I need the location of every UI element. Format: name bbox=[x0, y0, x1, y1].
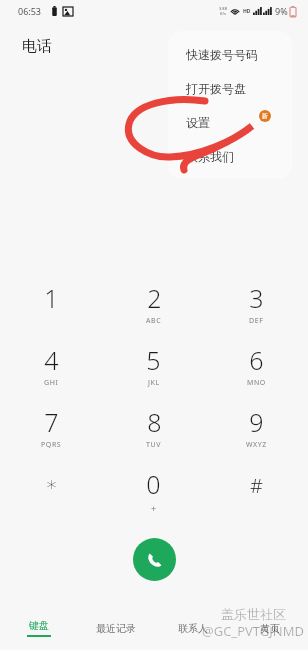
button[interactable]: 1 bbox=[0, 278, 102, 340]
staticText: 3 bbox=[249, 281, 264, 315]
staticText: 8 bbox=[147, 405, 162, 439]
staticText: TUV bbox=[146, 440, 162, 450]
staticText: 最近记录 bbox=[96, 622, 136, 635]
button[interactable]: Call bbox=[133, 538, 176, 581]
button[interactable]: # bbox=[205, 464, 308, 526]
staticText: 9% bbox=[275, 5, 288, 17]
staticText: 4 bbox=[44, 343, 59, 377]
button[interactable]: 最近记录 bbox=[77, 606, 154, 650]
staticText: 3.88 bbox=[219, 6, 227, 11]
button[interactable]: 快速拨号号码 bbox=[168, 37, 292, 71]
staticText: 快速拨号号码 bbox=[186, 47, 258, 62]
staticText: 黄页 bbox=[260, 622, 280, 635]
staticText: 0 bbox=[146, 467, 161, 501]
staticText: 联系人 bbox=[178, 622, 208, 635]
staticText: DEF bbox=[249, 316, 264, 326]
staticText: 联系我们 bbox=[186, 149, 234, 164]
button[interactable]: ∗ bbox=[0, 464, 102, 526]
staticText: 6 bbox=[249, 343, 264, 377]
button[interactable]: 9 bbox=[205, 402, 308, 464]
staticText: 2 bbox=[147, 281, 162, 315]
staticText: + bbox=[151, 502, 157, 514]
staticText: 盖乐世社区 bbox=[221, 606, 286, 622]
staticText: 打开拨号盘 bbox=[186, 81, 246, 96]
staticText: @GC_PVTGJNMD bbox=[202, 622, 304, 640]
button[interactable]: 联系人 bbox=[154, 606, 231, 650]
staticText: GHI bbox=[44, 378, 59, 388]
staticText: WXYZ bbox=[246, 440, 267, 450]
button[interactable]: 8 bbox=[102, 402, 205, 464]
button[interactable]: 3 bbox=[205, 278, 308, 340]
staticText: 电话 bbox=[22, 37, 52, 56]
staticText: JKL bbox=[148, 378, 160, 388]
staticText: HD bbox=[243, 8, 251, 15]
button[interactable]: 6 bbox=[205, 340, 308, 402]
button[interactable]: 5 bbox=[102, 340, 205, 402]
staticText: 06:53 bbox=[18, 5, 42, 17]
staticText: # bbox=[250, 472, 263, 499]
button[interactable]: 2 bbox=[102, 278, 205, 340]
staticText: PQRS bbox=[41, 440, 62, 450]
staticText: 键盘 bbox=[29, 619, 49, 632]
button[interactable]: 打开拨号盘 bbox=[168, 71, 292, 105]
button[interactable]: 7 bbox=[0, 402, 102, 464]
button[interactable]: 键盘 bbox=[0, 606, 77, 650]
staticText: 新 bbox=[262, 112, 268, 120]
staticText: K/s bbox=[220, 11, 226, 16]
staticText: MNO bbox=[247, 378, 266, 388]
staticText: 设置 bbox=[186, 115, 210, 130]
staticText: ABC bbox=[146, 316, 162, 326]
staticText: 5 bbox=[146, 343, 161, 377]
staticText: 9 bbox=[249, 405, 264, 439]
button[interactable]: 设置 bbox=[168, 105, 292, 139]
staticText: 1 bbox=[44, 281, 59, 315]
button[interactable]: 4 bbox=[0, 340, 102, 402]
staticText: 7 bbox=[44, 405, 59, 439]
button[interactable]: 0 bbox=[102, 464, 205, 526]
staticText: ∗ bbox=[45, 472, 58, 495]
button[interactable]: 黄页 bbox=[231, 606, 308, 650]
button[interactable]: 联系我们 bbox=[168, 139, 292, 173]
